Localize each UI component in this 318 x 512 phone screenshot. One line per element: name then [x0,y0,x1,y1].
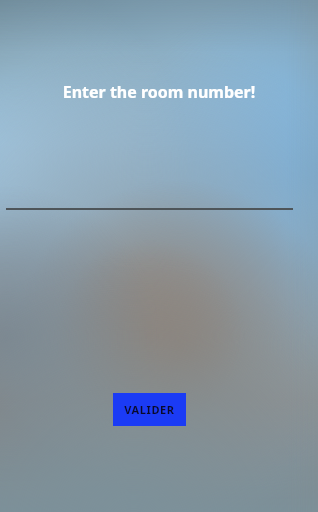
button[interactable]: VALIDER [113,393,186,426]
staticText: VALIDER [124,402,175,417]
staticText: Enter the room number! [0,81,318,103]
button[interactable]: Room number input [6,186,293,210]
